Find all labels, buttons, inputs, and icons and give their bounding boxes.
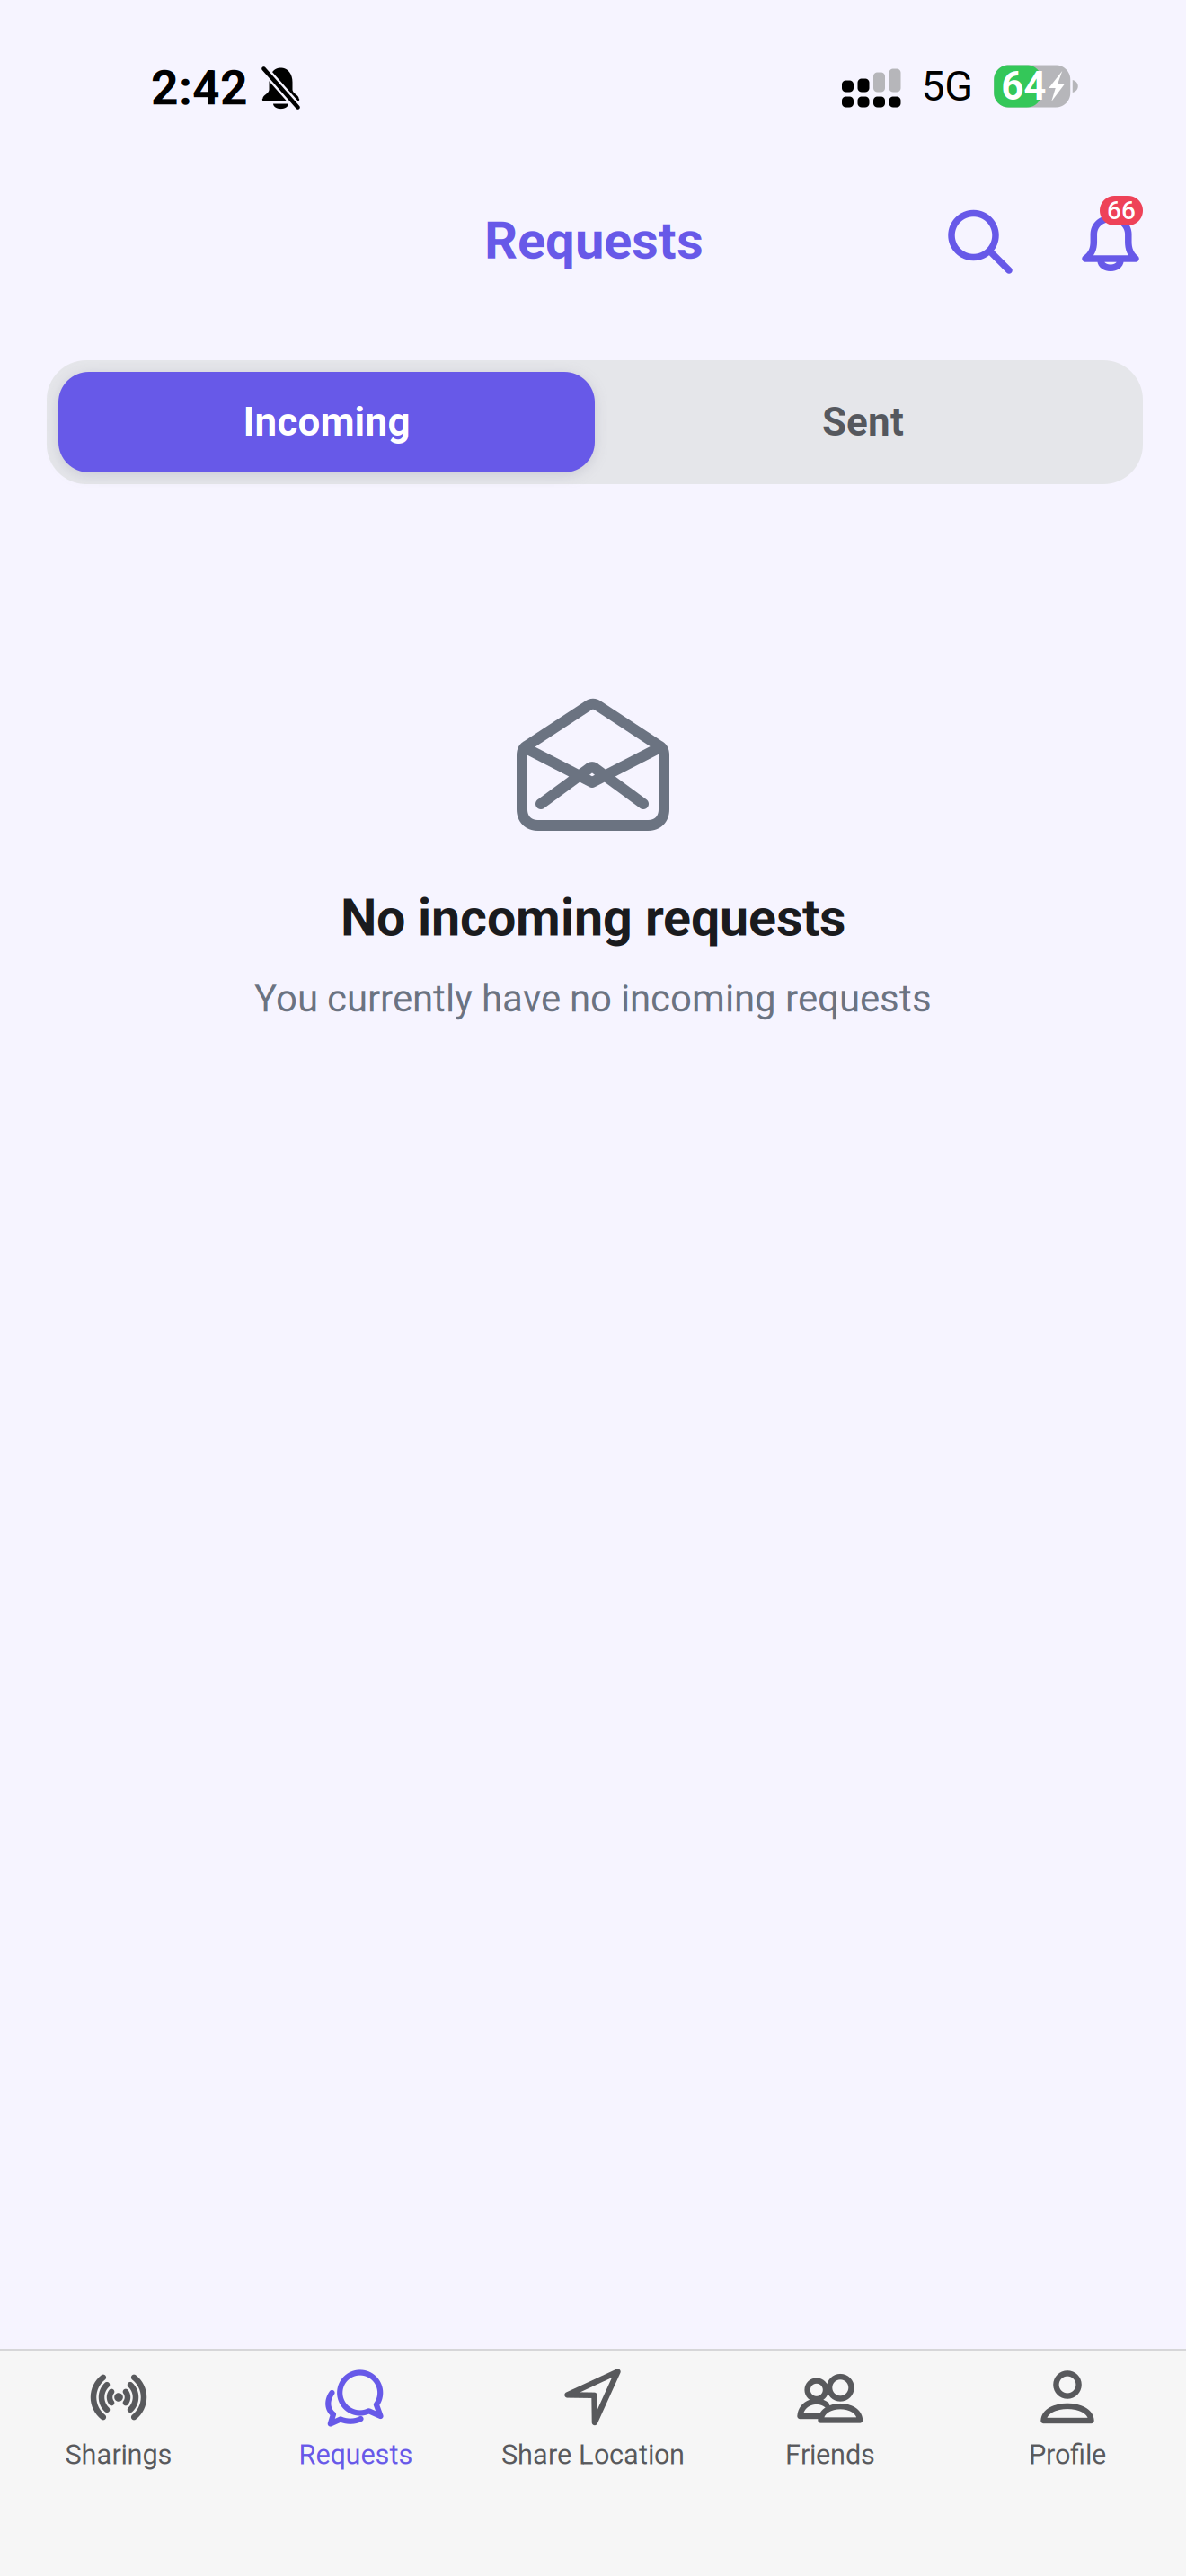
button[interactable]: Notifications bbox=[1062, 185, 1163, 286]
button[interactable]: Friends bbox=[712, 2350, 949, 2576]
button[interactable]: Sent bbox=[595, 372, 1131, 472]
staticText: 66 bbox=[1107, 196, 1136, 225]
staticText: Share Location bbox=[501, 2439, 685, 2471]
staticText: 2:42 bbox=[151, 60, 248, 116]
staticText: Friends bbox=[785, 2439, 875, 2471]
staticText: Sent bbox=[822, 399, 904, 445]
staticText: Requests bbox=[299, 2439, 413, 2471]
staticText: Sharings bbox=[65, 2439, 172, 2471]
staticText: No incoming requests bbox=[341, 888, 845, 948]
staticText: Requests bbox=[484, 210, 704, 271]
button[interactable]: Search bbox=[931, 192, 1030, 291]
button[interactable]: Incoming bbox=[58, 372, 595, 472]
staticText: 5G bbox=[921, 62, 973, 111]
staticText: 64 bbox=[1001, 63, 1046, 109]
button[interactable]: Profile bbox=[949, 2350, 1186, 2576]
staticText: You currently have no incoming requests bbox=[254, 977, 932, 1021]
button[interactable]: Requests bbox=[237, 2350, 474, 2576]
staticText: Incoming bbox=[243, 399, 410, 445]
button[interactable]: Share Location bbox=[474, 2350, 712, 2576]
button[interactable]: Sharings bbox=[0, 2350, 237, 2576]
staticText: Profile bbox=[1029, 2439, 1106, 2471]
